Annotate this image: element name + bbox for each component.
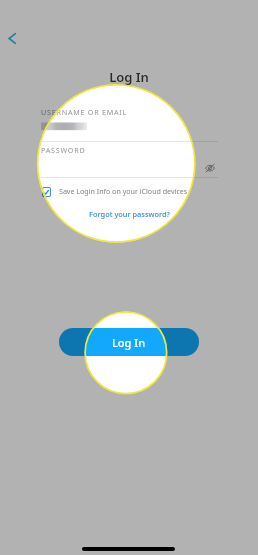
staticText: Log In bbox=[0, 68, 258, 86]
button[interactable]: Show password bbox=[199, 157, 220, 178]
staticText: Save Login Info on your iCloud devices bbox=[59, 186, 188, 196]
button[interactable]: Log In bbox=[59, 328, 199, 356]
button[interactable]: Save Login Info on your iCloud devices bbox=[42, 185, 188, 197]
button[interactable]: Forgot your password? bbox=[87, 209, 172, 219]
staticText: PASSWORD bbox=[41, 145, 86, 155]
staticText: Log In bbox=[112, 335, 146, 350]
button[interactable]: Back bbox=[0, 25, 25, 51]
staticText: USERNAME OR EMAIL bbox=[41, 107, 128, 117]
